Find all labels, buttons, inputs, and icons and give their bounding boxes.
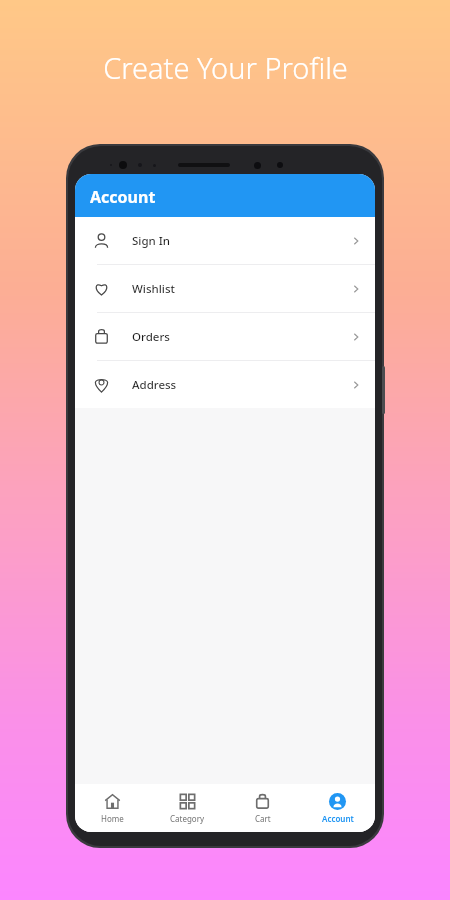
button[interactable]: Home xyxy=(75,784,150,832)
staticText: Cart xyxy=(255,813,271,824)
button[interactable]: Orders xyxy=(75,313,375,360)
staticText: Sign In xyxy=(132,233,171,249)
staticText: Address xyxy=(132,377,177,393)
button[interactable]: Category xyxy=(150,784,225,832)
staticText: Account xyxy=(322,813,354,824)
button[interactable]: Sign In xyxy=(75,217,375,264)
staticText: Wishlist xyxy=(132,281,175,297)
staticText: Category xyxy=(170,813,205,824)
button[interactable]: Address xyxy=(75,361,375,408)
staticText: Home xyxy=(101,813,124,824)
button[interactable]: Cart xyxy=(225,784,300,832)
button[interactable]: Wishlist xyxy=(75,265,375,312)
button[interactable]: Account xyxy=(300,784,375,832)
staticText: Create Your Profile xyxy=(103,48,348,87)
staticText: Orders xyxy=(132,329,170,345)
staticText: Account xyxy=(90,186,156,208)
